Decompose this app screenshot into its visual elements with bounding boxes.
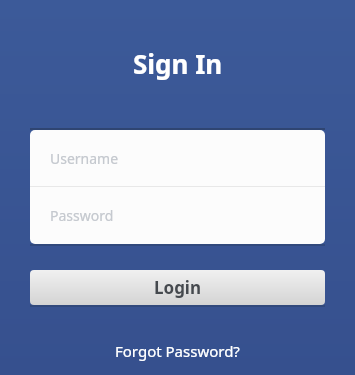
button[interactable]: Password <box>30 187 325 244</box>
staticText: Forgot Password? <box>115 341 240 361</box>
staticText: Sign In <box>133 46 223 81</box>
staticText: Password <box>50 206 114 225</box>
button[interactable]: Login <box>30 270 325 305</box>
staticText: Login <box>154 276 202 299</box>
button[interactable]: Forgot Password? <box>115 341 240 361</box>
button[interactable]: Username <box>30 130 325 186</box>
staticText: Username <box>50 149 119 168</box>
